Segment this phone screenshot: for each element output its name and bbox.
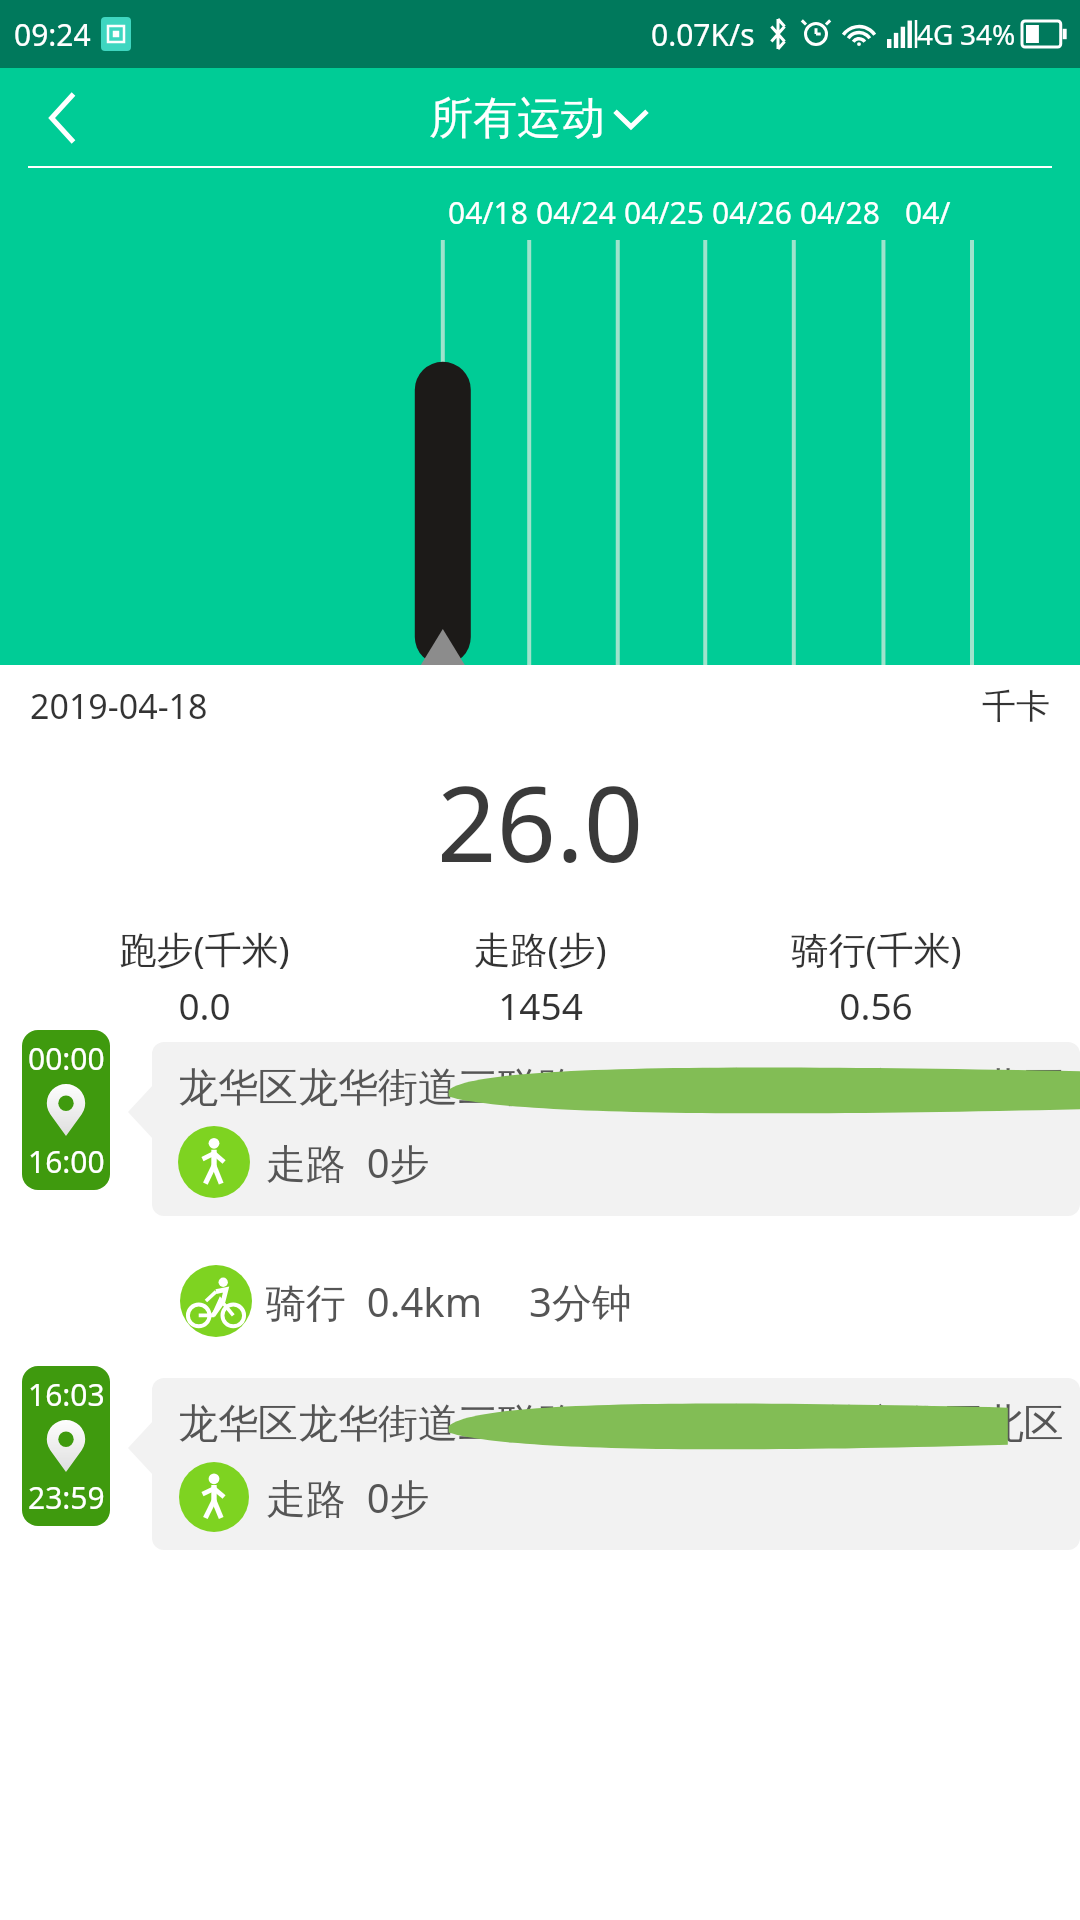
staticText: 0.56 bbox=[839, 980, 913, 1030]
staticText: 00:00 bbox=[28, 1038, 105, 1079]
button[interactable]: 龙华区龙华街道三联路29号附近大夫第文化园北区附近 bbox=[152, 1378, 1080, 1550]
staticText: 04/ bbox=[905, 192, 951, 233]
staticText: 3分钟 bbox=[529, 1274, 632, 1329]
staticText: 09:24 bbox=[14, 14, 91, 55]
staticText: 龙华区龙华街道三联路29号附近大夫第文化园北区附近 bbox=[178, 1394, 1080, 1449]
staticText: 04/18 bbox=[448, 192, 528, 233]
staticText: 1454 bbox=[498, 980, 583, 1030]
staticText: 23:59 bbox=[28, 1477, 105, 1518]
button[interactable]: 00:00 bbox=[22, 1030, 110, 1190]
button[interactable]: 所有运动 bbox=[429, 91, 651, 146]
staticText: 04/28 bbox=[800, 192, 880, 233]
staticText: 26.0 bbox=[437, 751, 644, 893]
button[interactable]: Back bbox=[28, 83, 98, 153]
staticText: 龙华区龙华街道三联路29号附近大夫第文化园北区附近 bbox=[178, 1058, 1080, 1113]
staticText: 走路(步) bbox=[473, 923, 607, 974]
staticText: 04/25 bbox=[624, 192, 704, 233]
staticText: 16:00 bbox=[28, 1141, 105, 1182]
staticText: 2019-04-18 bbox=[30, 683, 208, 729]
button[interactable]: 龙华区龙华街道三联路29号附近大夫第文化园北区附近 bbox=[152, 1042, 1080, 1216]
staticText: 0.0 bbox=[178, 980, 231, 1030]
staticText: 走路 0步 bbox=[266, 1470, 430, 1525]
staticText: 04/26 bbox=[712, 192, 792, 233]
staticText: 34% bbox=[960, 15, 1016, 53]
staticText: 0.07K/s bbox=[651, 14, 755, 55]
staticText: 跑步(千米) bbox=[119, 923, 290, 974]
staticText: 4G bbox=[917, 15, 954, 53]
staticText: 走路 0步 bbox=[266, 1135, 430, 1190]
staticText: 千卡 bbox=[982, 685, 1050, 728]
staticText: 骑行 0.4km bbox=[266, 1274, 483, 1329]
staticText: 16:03 bbox=[28, 1374, 105, 1415]
button[interactable]: 16:03 bbox=[22, 1366, 110, 1526]
button[interactable]: 骑行 0.4km bbox=[180, 1246, 1080, 1356]
staticText: 所有运动 bbox=[429, 91, 605, 146]
staticText: 骑行(千米) bbox=[791, 923, 962, 974]
staticText: 04/24 bbox=[536, 192, 616, 233]
